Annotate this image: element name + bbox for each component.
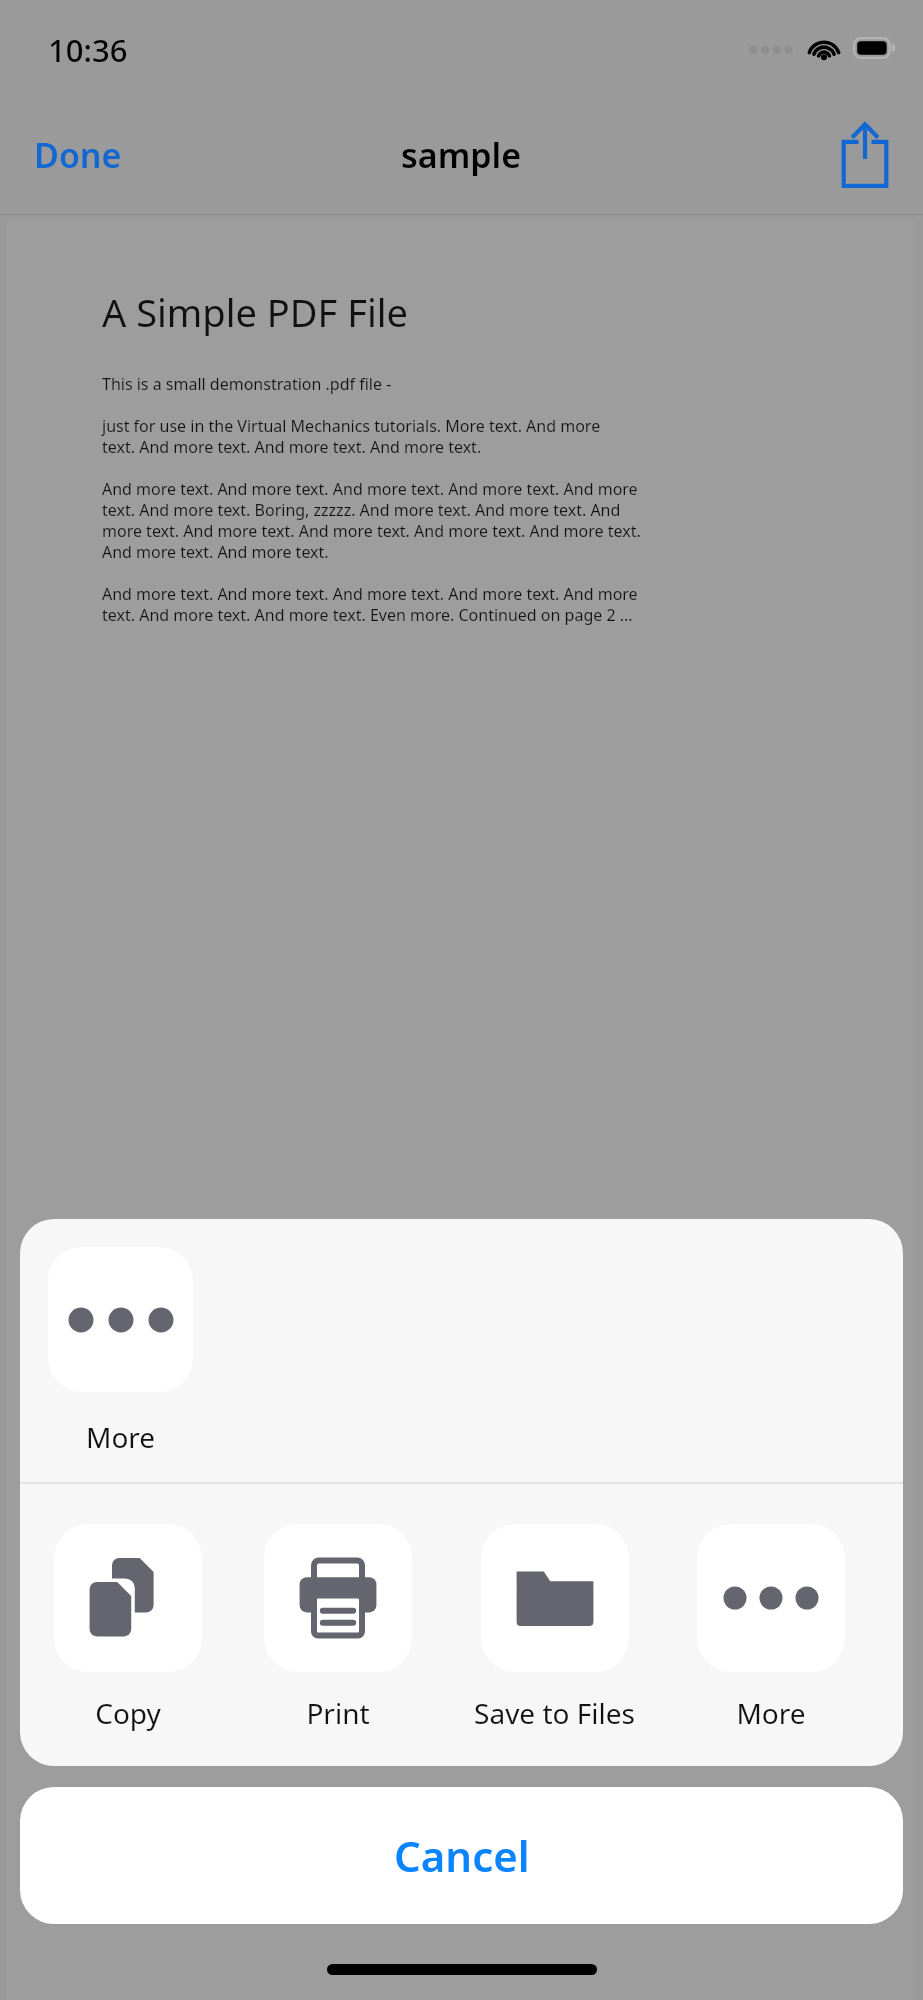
staticText: Save to Files: [474, 1694, 635, 1732]
staticText: This is a small demonstration .pdf file …: [102, 373, 392, 395]
button[interactable]: Share: [837, 122, 893, 188]
staticText: More: [86, 1418, 156, 1456]
button[interactable]: Save to Files: [474, 1524, 635, 1732]
staticText: Done: [34, 132, 122, 178]
staticText: Cancel: [394, 1827, 530, 1884]
button[interactable]: Print: [264, 1524, 412, 1732]
staticText: just for use in the Virtual Mechanics tu…: [102, 415, 601, 458]
staticText: And more text. And more text. And more t…: [102, 478, 641, 563]
staticText: sample: [401, 132, 522, 178]
staticText: Copy: [95, 1694, 161, 1732]
staticText: Print: [306, 1694, 370, 1732]
button[interactable]: More: [48, 1247, 205, 1456]
staticText: A Simple PDF File: [102, 286, 408, 338]
staticText: 10:36: [48, 29, 128, 71]
button[interactable]: Cancel: [20, 1787, 903, 1924]
staticText: More: [736, 1694, 806, 1732]
button[interactable]: Done: [20, 122, 136, 188]
staticText: And more text. And more text. And more t…: [102, 583, 638, 626]
button[interactable]: More: [697, 1524, 845, 1732]
button[interactable]: Copy: [54, 1524, 202, 1732]
